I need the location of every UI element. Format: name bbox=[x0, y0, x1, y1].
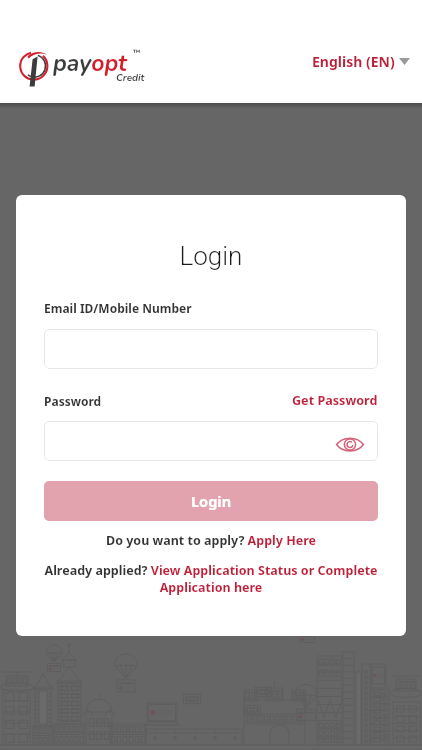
staticText: Login bbox=[16, 241, 406, 271]
button[interactable]: Login bbox=[44, 481, 378, 521]
button[interactable]: Already applied? View Application Status… bbox=[44, 562, 378, 596]
staticText: Password bbox=[44, 393, 102, 409]
staticText: Login bbox=[191, 491, 232, 511]
staticText: Already applied? View Application Status… bbox=[44, 562, 378, 596]
staticText: Email ID/Mobile Number bbox=[44, 300, 192, 316]
button[interactable]: Get Password bbox=[292, 392, 378, 409]
button[interactable]: Payopt Credit bbox=[18, 44, 142, 84]
staticText: Do you want to apply? Apply Here bbox=[44, 532, 378, 549]
button[interactable]: Show password bbox=[44, 421, 378, 461]
staticText: Credit bbox=[116, 71, 145, 85]
button[interactable] bbox=[44, 329, 378, 369]
button[interactable]: Do you want to apply? Apply Here bbox=[44, 532, 378, 549]
button[interactable]: English (EN) bbox=[310, 48, 412, 79]
staticText: English (EN) bbox=[312, 52, 395, 71]
staticText: payopt bbox=[53, 48, 127, 79]
staticText: ™ bbox=[133, 47, 141, 57]
button[interactable]: Show password bbox=[333, 432, 367, 456]
staticText: Get Password bbox=[292, 392, 378, 409]
